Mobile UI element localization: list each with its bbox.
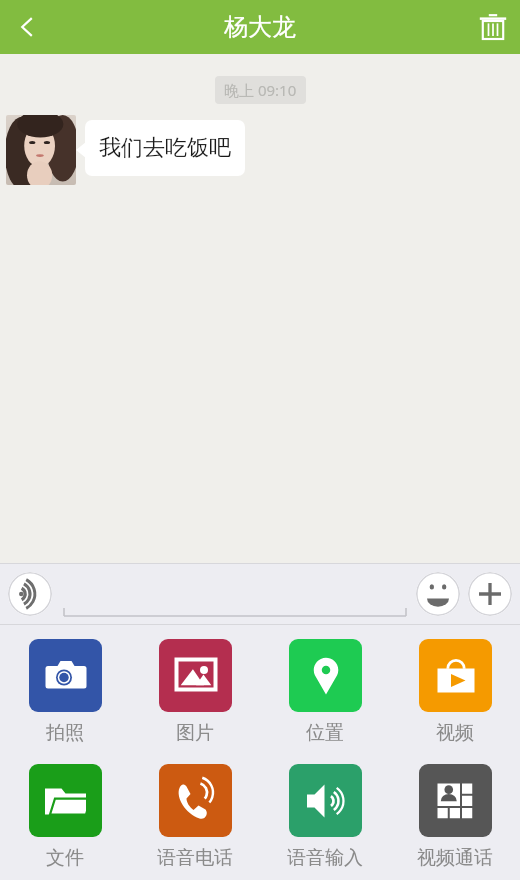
button[interactable] — [64, 572, 406, 616]
staticText: 文件 — [46, 846, 84, 870]
button[interactable]: 视频通话 — [390, 764, 520, 870]
staticText: 拍照 — [46, 721, 84, 745]
button[interactable]: 我们去吃饭吧 — [85, 120, 245, 176]
staticText: 我们去吃饭吧 — [99, 134, 231, 162]
staticText: 杨大龙 — [224, 12, 296, 42]
staticText: 视频 — [436, 721, 474, 745]
button[interactable]: 拍照 — [0, 639, 130, 745]
button[interactable]: 文件 — [0, 764, 130, 870]
staticText: 视频通话 — [417, 846, 493, 870]
button[interactable]: 图片 — [130, 639, 260, 745]
button[interactable]: Emoji — [416, 572, 460, 616]
button[interactable]: 语音输入 — [260, 764, 390, 870]
button[interactable]: Back — [0, 0, 54, 54]
staticText: 语音输入 — [287, 846, 363, 870]
staticText: 位置 — [306, 721, 344, 745]
button[interactable]: Delete — [466, 0, 520, 54]
staticText: 图片 — [176, 721, 214, 745]
button[interactable]: 语音电话 — [130, 764, 260, 870]
button[interactable]: 位置 — [260, 639, 390, 745]
button[interactable]: Voice message — [8, 572, 52, 616]
button[interactable]: Avatar — [6, 115, 76, 185]
button[interactable]: 视频 — [390, 639, 520, 745]
staticText: 语音电话 — [157, 846, 233, 870]
button[interactable]: Add attachment — [468, 572, 512, 616]
staticText: 晚上 09:10 — [224, 80, 297, 100]
